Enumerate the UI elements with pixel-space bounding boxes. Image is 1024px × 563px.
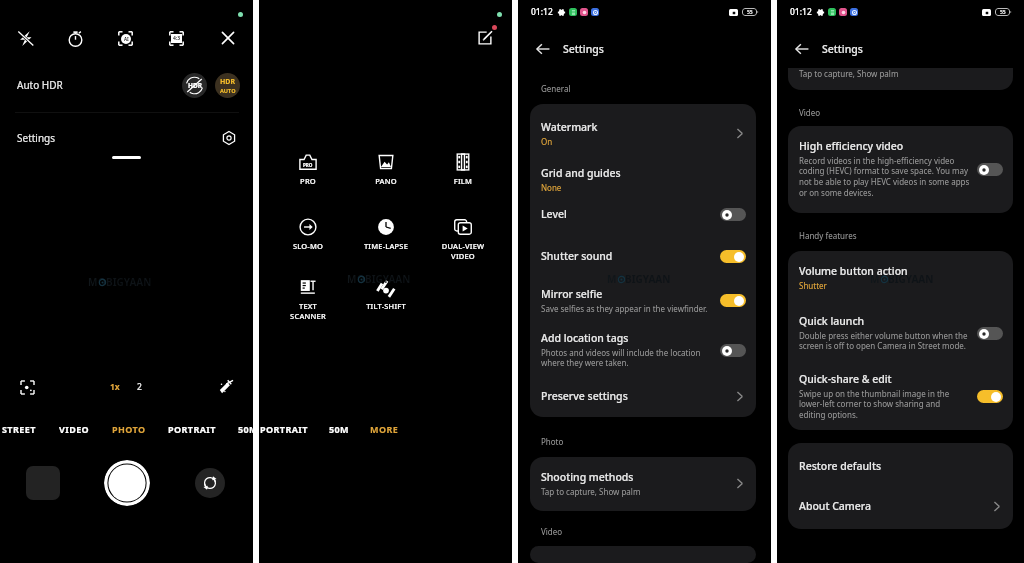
staticText: SLO-MO — [275, 241, 341, 251]
button[interactable]: On — [720, 250, 746, 263]
button[interactable]: Aspect ratio 4:3 — [151, 0, 202, 76]
button[interactable]: 50M — [329, 423, 349, 435]
button[interactable]: Add location tags — [530, 321, 756, 378]
button[interactable]: Off — [720, 344, 746, 357]
staticText: 2 — [137, 381, 142, 393]
staticText: PANO — [353, 176, 419, 186]
staticText: Photos and videos will include the locat… — [541, 347, 704, 369]
button[interactable]: On — [977, 390, 1003, 403]
button[interactable]: Enhance — [215, 376, 237, 398]
staticText: Quick-share & edit — [799, 372, 892, 386]
button[interactable]: MORE — [370, 423, 399, 435]
button[interactable]: PORTRAIT — [168, 423, 216, 435]
button[interactable]: Close — [202, 0, 253, 76]
button[interactable]: Quick launch — [788, 302, 1013, 363]
button[interactable]: SLO-MO — [275, 218, 341, 251]
staticText: 01:12 — [790, 6, 812, 18]
button[interactable]: Flash off — [0, 0, 50, 76]
button[interactable]: Settings — [0, 119, 253, 157]
button[interactable]: VIDEO — [59, 423, 90, 435]
staticText: Photo — [541, 436, 564, 447]
staticText: Preserve settings — [541, 389, 628, 403]
staticText: Settings — [563, 42, 604, 56]
button[interactable]: On — [720, 294, 746, 307]
button[interactable]: Watermark — [530, 104, 756, 156]
button[interactable]: TILT-SHIFT — [353, 278, 419, 311]
button[interactable]: DUAL-VIEW VIDEO — [430, 218, 496, 261]
staticText: Watermark — [541, 120, 598, 134]
staticText: Shooting methods — [541, 470, 634, 484]
staticText: Handy features — [799, 230, 857, 241]
staticText: M — [347, 272, 357, 286]
button[interactable]: 50M — [238, 423, 253, 435]
button[interactable]: Grid and guides — [530, 156, 756, 201]
staticText: Swipe up on the thumbnail image in the l… — [799, 388, 957, 421]
staticText: 01:12 — [531, 6, 553, 18]
staticText: General — [541, 83, 571, 94]
staticText: 55 — [1000, 9, 1006, 16]
button[interactable]: Off — [720, 208, 746, 221]
staticText: Save selfies as they appear in the viewf… — [541, 303, 714, 314]
button[interactable]: Off — [977, 163, 1003, 176]
button[interactable]: PRO — [275, 153, 341, 186]
staticText: PRO — [275, 176, 341, 186]
staticText: None — [541, 182, 746, 193]
button[interactable]: PANO — [353, 153, 419, 186]
button[interactable]: FILM — [430, 153, 496, 186]
button[interactable]: High efficiency video — [788, 126, 1013, 213]
staticText: Quick launch — [799, 314, 865, 328]
button[interactable]: Shutter — [104, 460, 150, 506]
staticText: 4:3 — [173, 35, 181, 42]
staticText: TEXT SCANNER — [275, 301, 341, 321]
staticText: M — [870, 272, 880, 286]
button[interactable]: TEXT SCANNER — [275, 278, 341, 321]
button[interactable]: Back — [791, 38, 813, 60]
button[interactable]: TIME-LAPSE — [353, 218, 419, 251]
staticText: TILT-SHIFT — [353, 301, 419, 311]
button[interactable]: Off — [977, 327, 1003, 340]
staticText: AI — [124, 36, 129, 42]
staticText: Video — [799, 107, 821, 118]
button[interactable]: Switch camera — [195, 468, 225, 498]
button[interactable]: Edit modes — [474, 27, 496, 49]
staticText: Settings — [17, 131, 56, 145]
staticText: Shutter sound — [541, 249, 613, 263]
staticText: O — [880, 272, 888, 286]
button[interactable]: PORTRAIT — [259, 423, 308, 435]
staticText: Shutter — [799, 280, 1003, 291]
staticText: Tap to capture, Show palm — [799, 68, 899, 79]
staticText: Auto HDR — [17, 78, 63, 92]
staticText: Settings — [822, 42, 863, 56]
button[interactable]: HDR auto — [215, 73, 240, 98]
staticText: Double press either volume button when t… — [799, 330, 971, 352]
button[interactable]: About Camera — [788, 486, 1013, 529]
button[interactable]: Preserve settings — [530, 378, 756, 417]
staticText: PRO — [303, 162, 313, 168]
staticText: Volume button action — [799, 264, 908, 278]
staticText: About Camera — [799, 499, 872, 513]
button[interactable]: Restore defaults — [788, 443, 1013, 486]
button[interactable]: Volume button action — [788, 251, 1013, 302]
staticText: O — [357, 272, 365, 286]
button[interactable]: HDR off — [182, 73, 207, 98]
button[interactable]: High efficiency video — [530, 546, 756, 563]
staticText: On — [541, 136, 727, 147]
staticText: High efficiency video — [799, 139, 904, 153]
button[interactable]: Mirror selfie — [530, 276, 756, 321]
button[interactable]: Quick-share & edit — [788, 363, 1013, 430]
button[interactable]: Timer — [50, 0, 100, 76]
button[interactable]: Focus — [16, 376, 38, 398]
button[interactable]: Back — [532, 38, 554, 60]
staticText: AUTO — [220, 87, 236, 95]
button[interactable]: Level — [530, 201, 756, 235]
button[interactable]: Gallery — [26, 466, 60, 500]
staticText: Grid and guides — [541, 166, 621, 180]
button[interactable]: PHOTO — [112, 423, 146, 435]
button[interactable]: AI scene — [100, 0, 151, 76]
staticText: Level — [541, 207, 567, 221]
button[interactable]: STREET — [0, 423, 36, 435]
staticText: 1x — [110, 381, 120, 393]
staticText: Tap to capture, Show palm — [541, 486, 727, 497]
button[interactable]: Shutter sound — [530, 235, 756, 276]
button[interactable]: Shooting methods — [530, 457, 756, 511]
